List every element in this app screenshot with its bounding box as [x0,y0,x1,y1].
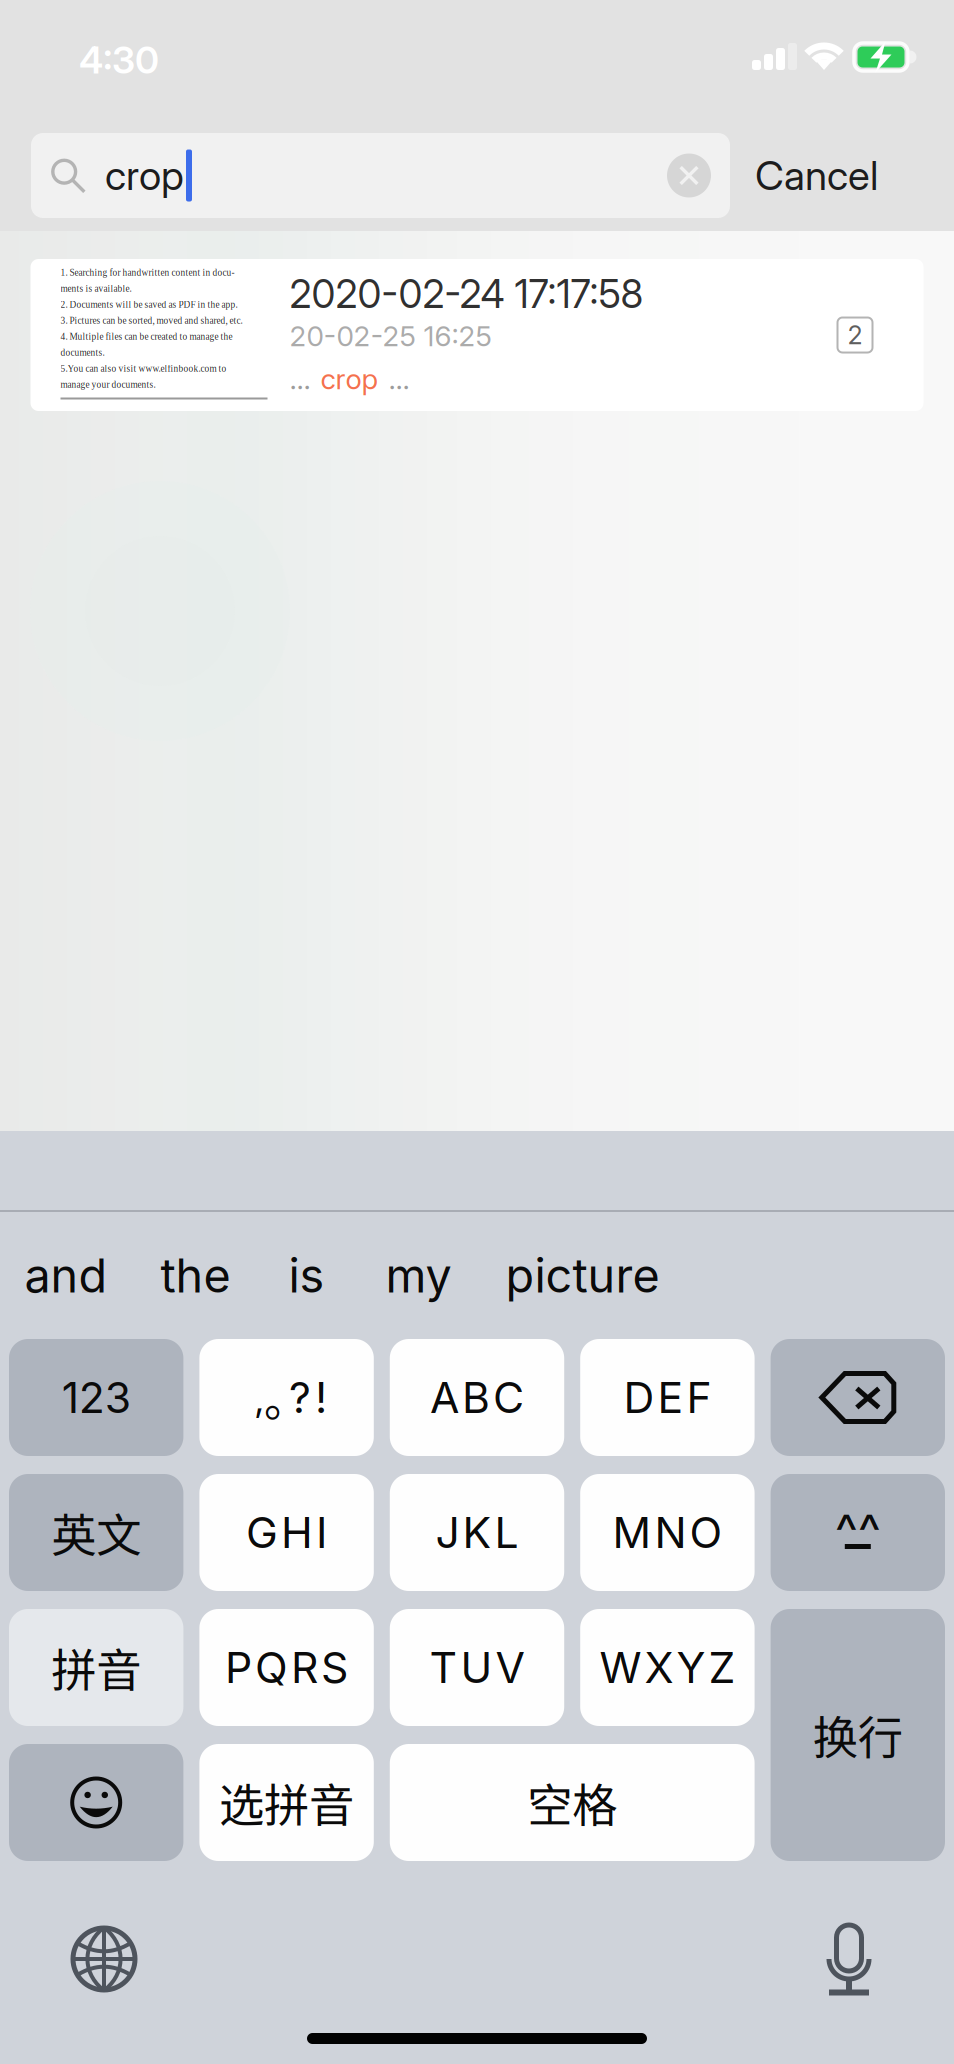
staticText: 。 [264,1366,308,1429]
staticText: is [288,1247,324,1304]
staticText: JKL [435,1507,518,1558]
button[interactable]: is [285,1239,328,1311]
button[interactable]: the [155,1239,236,1311]
staticText: ... [388,362,409,396]
button[interactable]: Kaomoji [771,1474,945,1591]
staticText: and [24,1247,107,1304]
button[interactable]: Delete [771,1339,945,1456]
button[interactable]: and [22,1239,110,1311]
staticText: 换行 [813,1702,903,1768]
staticText: 1. Searching for handwritten content in … [60,267,234,278]
staticText: TUV [429,1642,524,1693]
staticText: PQRS [225,1642,348,1693]
staticText: 3. Pictures can be sorted, moved and sha… [60,315,242,326]
staticText: documents. [60,347,104,358]
staticText: my [385,1247,451,1304]
button[interactable]: my [382,1239,455,1311]
button[interactable]: ABC [390,1339,564,1456]
staticText: 20-02-25 16:25 [289,319,491,353]
staticText: ABC [430,1372,524,1423]
staticText: 4:30 [79,37,159,83]
button[interactable]: WXYZ [580,1609,755,1726]
staticText: 4. Multiple files can be created to mana… [60,331,232,342]
button[interactable]: MNO [580,1474,755,1591]
staticText: ments is available. [60,283,131,294]
button[interactable]: 1. Searching for handwritten content in … [30,259,923,411]
button[interactable]: Emoji [9,1744,183,1861]
staticText: the [160,1247,230,1304]
staticText: 123 [62,1372,131,1423]
button[interactable]: 选拼音 [199,1744,374,1861]
button[interactable]: PQRS [199,1609,374,1726]
staticText: ! [315,1372,327,1423]
staticText: 拼音 [51,1635,141,1700]
button[interactable]: Switch keyboard [52,1907,156,2011]
button[interactable]: Dictation [797,1907,901,2011]
button[interactable]: 换行 [771,1609,945,1861]
staticText: 5.You can also visit www.elfinbook.com t… [60,363,226,374]
button[interactable]: Punctuation [199,1339,374,1456]
button[interactable]: 123 [9,1339,183,1456]
staticText: ^^ [835,1502,881,1561]
button[interactable]: 空格 [390,1744,755,1861]
staticText: 选拼音 [219,1770,354,1835]
staticText: 空格 [527,1770,617,1835]
staticText: 2. Documents will be saved as PDF in the… [60,299,237,310]
staticText: Cancel [755,151,878,200]
staticText: ? [289,1372,311,1423]
button[interactable]: 英文 [9,1474,183,1591]
staticText: crop [320,362,378,396]
staticText: 2 [847,320,862,350]
staticText: 英文 [51,1500,141,1565]
button[interactable]: DEF [580,1339,755,1456]
button[interactable]: TUV [390,1609,564,1726]
staticText: DEF [623,1372,711,1423]
button[interactable]: Cancel [730,120,903,231]
staticText: WXYZ [599,1642,735,1693]
staticText: manage your documents. [60,379,155,390]
button[interactable]: Clear text [667,153,730,197]
staticText: , [255,1373,264,1422]
staticText: ... [289,362,310,396]
button[interactable]: picture [502,1239,663,1311]
staticText: crop [105,151,184,200]
button[interactable]: GHI [199,1474,374,1591]
button[interactable]: 拼音 [9,1609,183,1726]
button[interactable]: JKL [390,1474,564,1591]
staticText: GHI [246,1507,327,1558]
staticText: MNO [612,1507,722,1558]
staticText: picture [505,1247,659,1304]
staticText: 2020-02-24 17:17:58 [289,271,643,317]
